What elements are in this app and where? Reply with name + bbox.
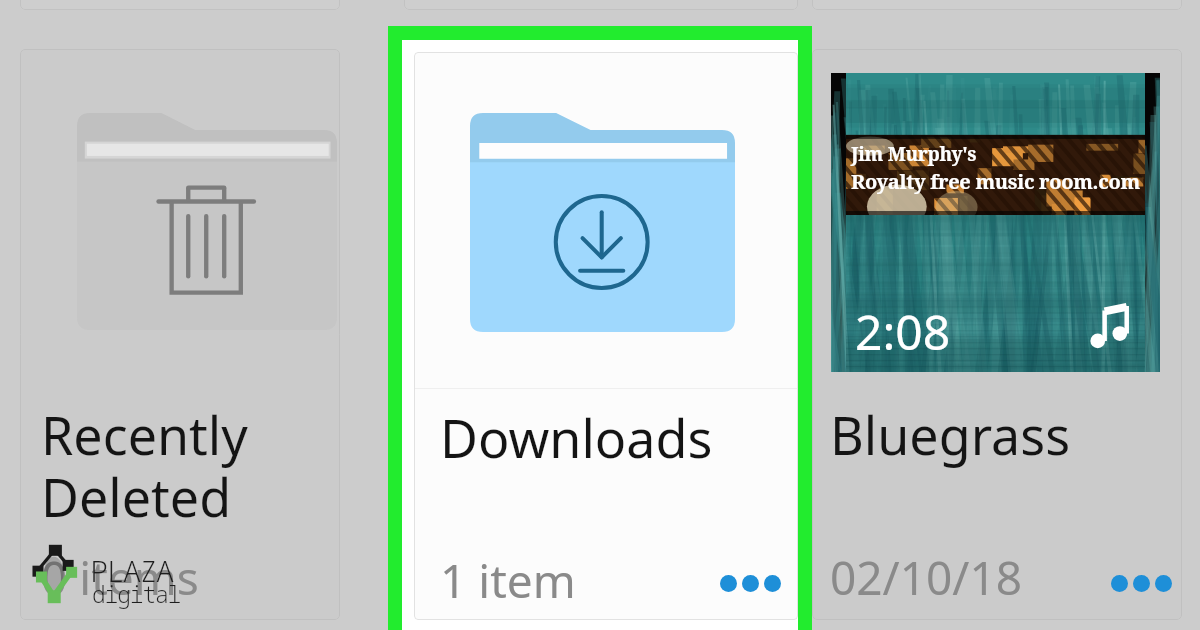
button[interactable]: More options xyxy=(1105,569,1178,598)
staticText: Jim Murphy's xyxy=(851,141,1141,167)
button[interactable]: Downloads xyxy=(414,52,798,620)
staticText: Royalty free music room.com xyxy=(851,168,1143,195)
staticText: Downloads xyxy=(440,402,713,473)
staticText: 2:08 xyxy=(855,299,951,364)
staticText: digital xyxy=(92,578,181,609)
button[interactable]: More options xyxy=(714,569,787,598)
staticText: 0 items xyxy=(41,546,199,609)
staticText: PLAZA xyxy=(90,550,173,591)
staticText: 1 item xyxy=(440,549,576,612)
staticText: 02/10/18 xyxy=(830,546,1023,609)
button[interactable]: Recently Deleted xyxy=(20,49,340,620)
button[interactable]: Jim Murphy's xyxy=(812,49,1182,620)
staticText: Bluegrass xyxy=(830,399,1071,470)
staticText: Recently Deleted xyxy=(41,399,248,532)
